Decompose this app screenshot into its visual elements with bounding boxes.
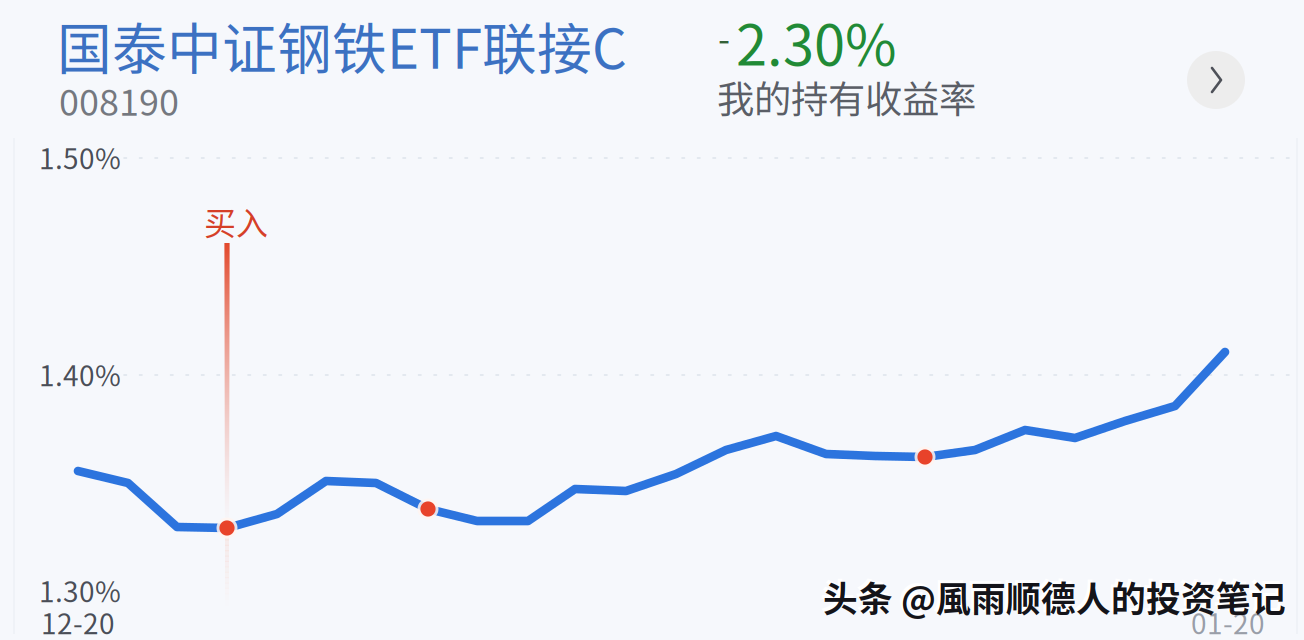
staticText: 01-20 — [1191, 602, 1265, 640]
staticText: 国泰中证钢铁ETF联接C — [57, 5, 627, 85]
button[interactable]: - — [718, 0, 1038, 130]
staticText: 008190 — [59, 74, 179, 126]
staticText: 头条 @風雨顺德人的投资笔记 — [823, 572, 1286, 622]
staticText: 头条 @風雨顺德人的投资笔记 — [820, 569, 1283, 619]
staticText: 买入 — [204, 198, 268, 244]
staticText: 1.30% — [39, 570, 121, 610]
staticText: 1.50% — [39, 137, 121, 177]
staticText: 1.40% — [39, 354, 121, 394]
button[interactable]: 查看持有收益详情 — [1178, 42, 1254, 118]
staticText: - — [718, 12, 730, 62]
staticText: 我的持有收益率 — [717, 70, 976, 124]
staticText: 2.30% — [736, 0, 897, 82]
staticText: 12-20 — [41, 602, 115, 640]
button[interactable]: 国泰中证钢铁ETF联接C — [57, 0, 657, 130]
